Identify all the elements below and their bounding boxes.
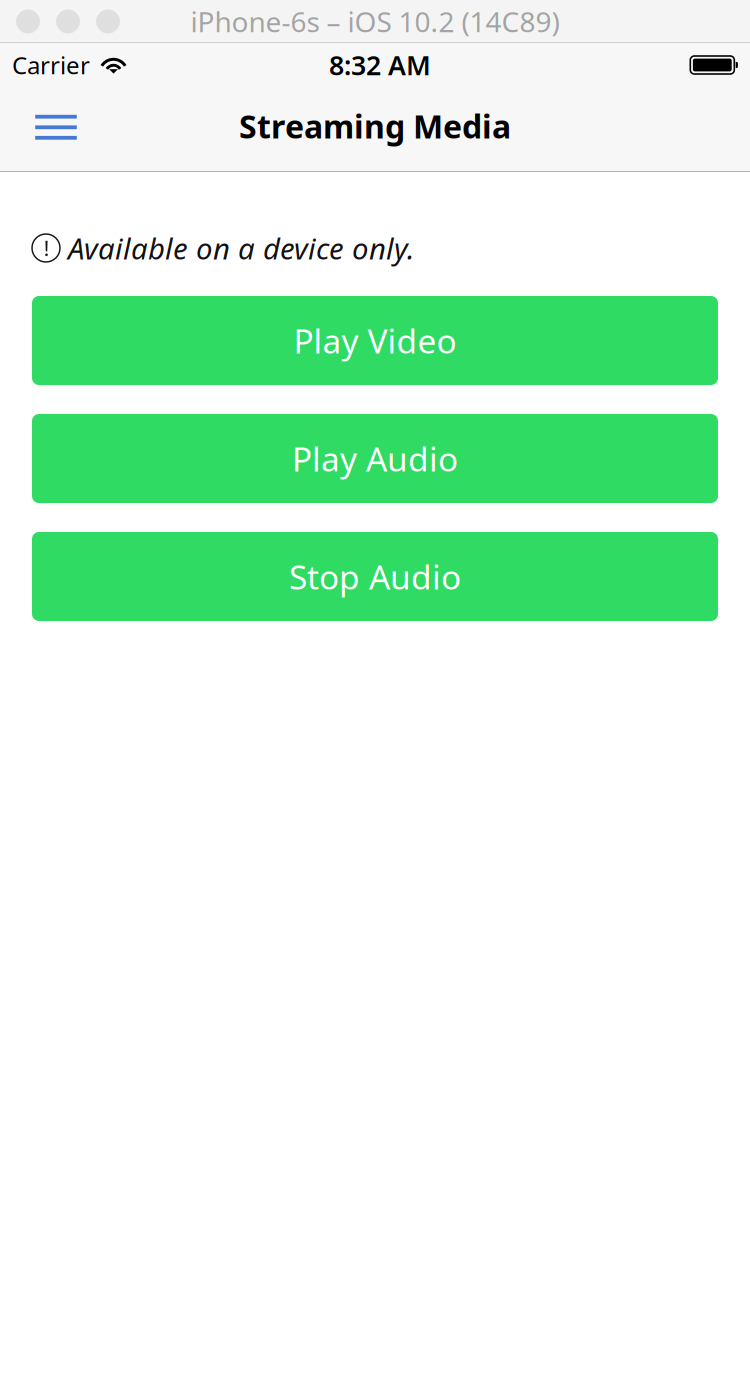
button[interactable]: Close (16, 9, 40, 33)
button[interactable]: Stop Audio (32, 532, 718, 621)
button[interactable]: Play Video (32, 296, 718, 385)
staticText: Streaming Media (239, 105, 511, 147)
staticText: 8:32 AM (329, 47, 431, 83)
staticText: Carrier (12, 49, 90, 81)
staticText: Play Video (293, 318, 456, 363)
staticText: Stop Audio (289, 554, 461, 599)
staticText: Play Audio (292, 436, 458, 481)
button[interactable]: Menu (22, 99, 84, 159)
button[interactable]: Play Audio (32, 414, 718, 503)
button[interactable]: Minimize (56, 9, 80, 33)
staticText: Available on a device only. (68, 228, 415, 267)
button[interactable]: Zoom (96, 9, 120, 33)
staticText: iPhone-6s – iOS 10.2 (14C89) (190, 3, 559, 40)
